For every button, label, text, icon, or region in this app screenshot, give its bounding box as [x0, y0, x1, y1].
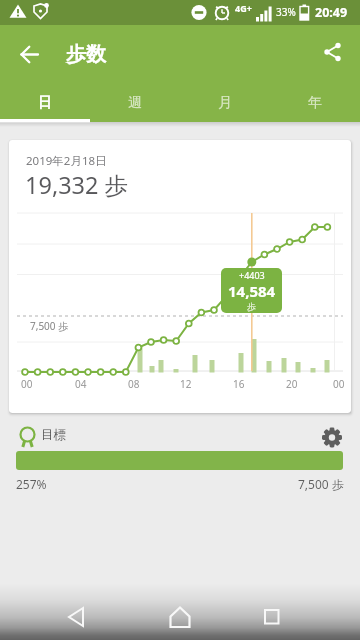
button[interactable] [312, 417, 352, 457]
staticText: 257% [16, 476, 47, 492]
staticText: 2019年2月18日 [26, 153, 107, 169]
staticText: 20:49 [315, 4, 348, 21]
staticText: 7,500 歩 [30, 319, 69, 333]
button[interactable]: 月 [180, 84, 270, 122]
staticText: 16 [233, 377, 245, 391]
staticText: 週 [128, 94, 142, 112]
staticText: 年 [308, 94, 322, 112]
button[interactable]: 年 [270, 84, 360, 122]
button[interactable]: 週 [90, 84, 180, 122]
button[interactable] [52, 597, 100, 637]
button[interactable]: 日 [0, 84, 90, 122]
staticText: 目標 [41, 427, 66, 443]
button[interactable] [248, 597, 296, 637]
staticText: 20 [286, 377, 298, 391]
staticText: 08 [128, 377, 140, 391]
staticText: 7,500 歩 [298, 476, 344, 492]
staticText: 33% [276, 5, 296, 19]
staticText: 04 [75, 377, 87, 391]
staticText: 4G+ [235, 2, 252, 14]
staticText: 14,584 [228, 281, 276, 301]
button[interactable] [8, 33, 52, 77]
staticText: 歩 [247, 301, 256, 312]
staticText: 日 [38, 94, 52, 112]
button[interactable] [156, 597, 204, 637]
staticText: 歩数 [66, 42, 106, 67]
staticText: 00 [21, 377, 33, 391]
staticText: 00 [333, 377, 345, 391]
staticText: +4403 [239, 269, 265, 281]
staticText: 12 [180, 377, 192, 391]
staticText: 19,332 歩 [25, 169, 129, 201]
staticText: 月 [218, 94, 232, 112]
button[interactable] [311, 33, 355, 77]
